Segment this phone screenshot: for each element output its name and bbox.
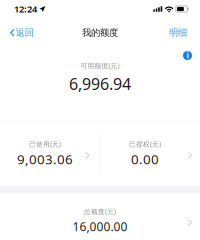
staticText: 已授权(元) — [129, 140, 161, 148]
button[interactable]: 返回 — [0, 21, 42, 45]
button[interactable]: 已使用(元) — [0, 132, 100, 176]
button[interactable]: 总额度(元) — [0, 196, 200, 240]
staticText: 已使用(元) — [29, 140, 61, 148]
staticText: 可用额度(元) — [80, 61, 119, 70]
staticText: 我的额度 — [82, 27, 118, 38]
button[interactable]: 已授权(元) — [100, 132, 200, 176]
staticText: 0.00 — [131, 150, 159, 168]
staticText: i — [186, 50, 188, 61]
staticText: 总额度(元) — [84, 207, 116, 216]
staticText: 返回 — [16, 27, 34, 38]
staticText: 6,996.94 — [69, 73, 131, 94]
staticText: 12:24 — [14, 3, 37, 15]
staticText: 明细 — [169, 27, 187, 38]
button[interactable]: 额度说明 — [180, 48, 195, 63]
staticText: 16,000.00 — [72, 218, 127, 234]
button[interactable]: 明细 — [161, 21, 200, 45]
staticText: 9,003.06 — [17, 150, 73, 168]
